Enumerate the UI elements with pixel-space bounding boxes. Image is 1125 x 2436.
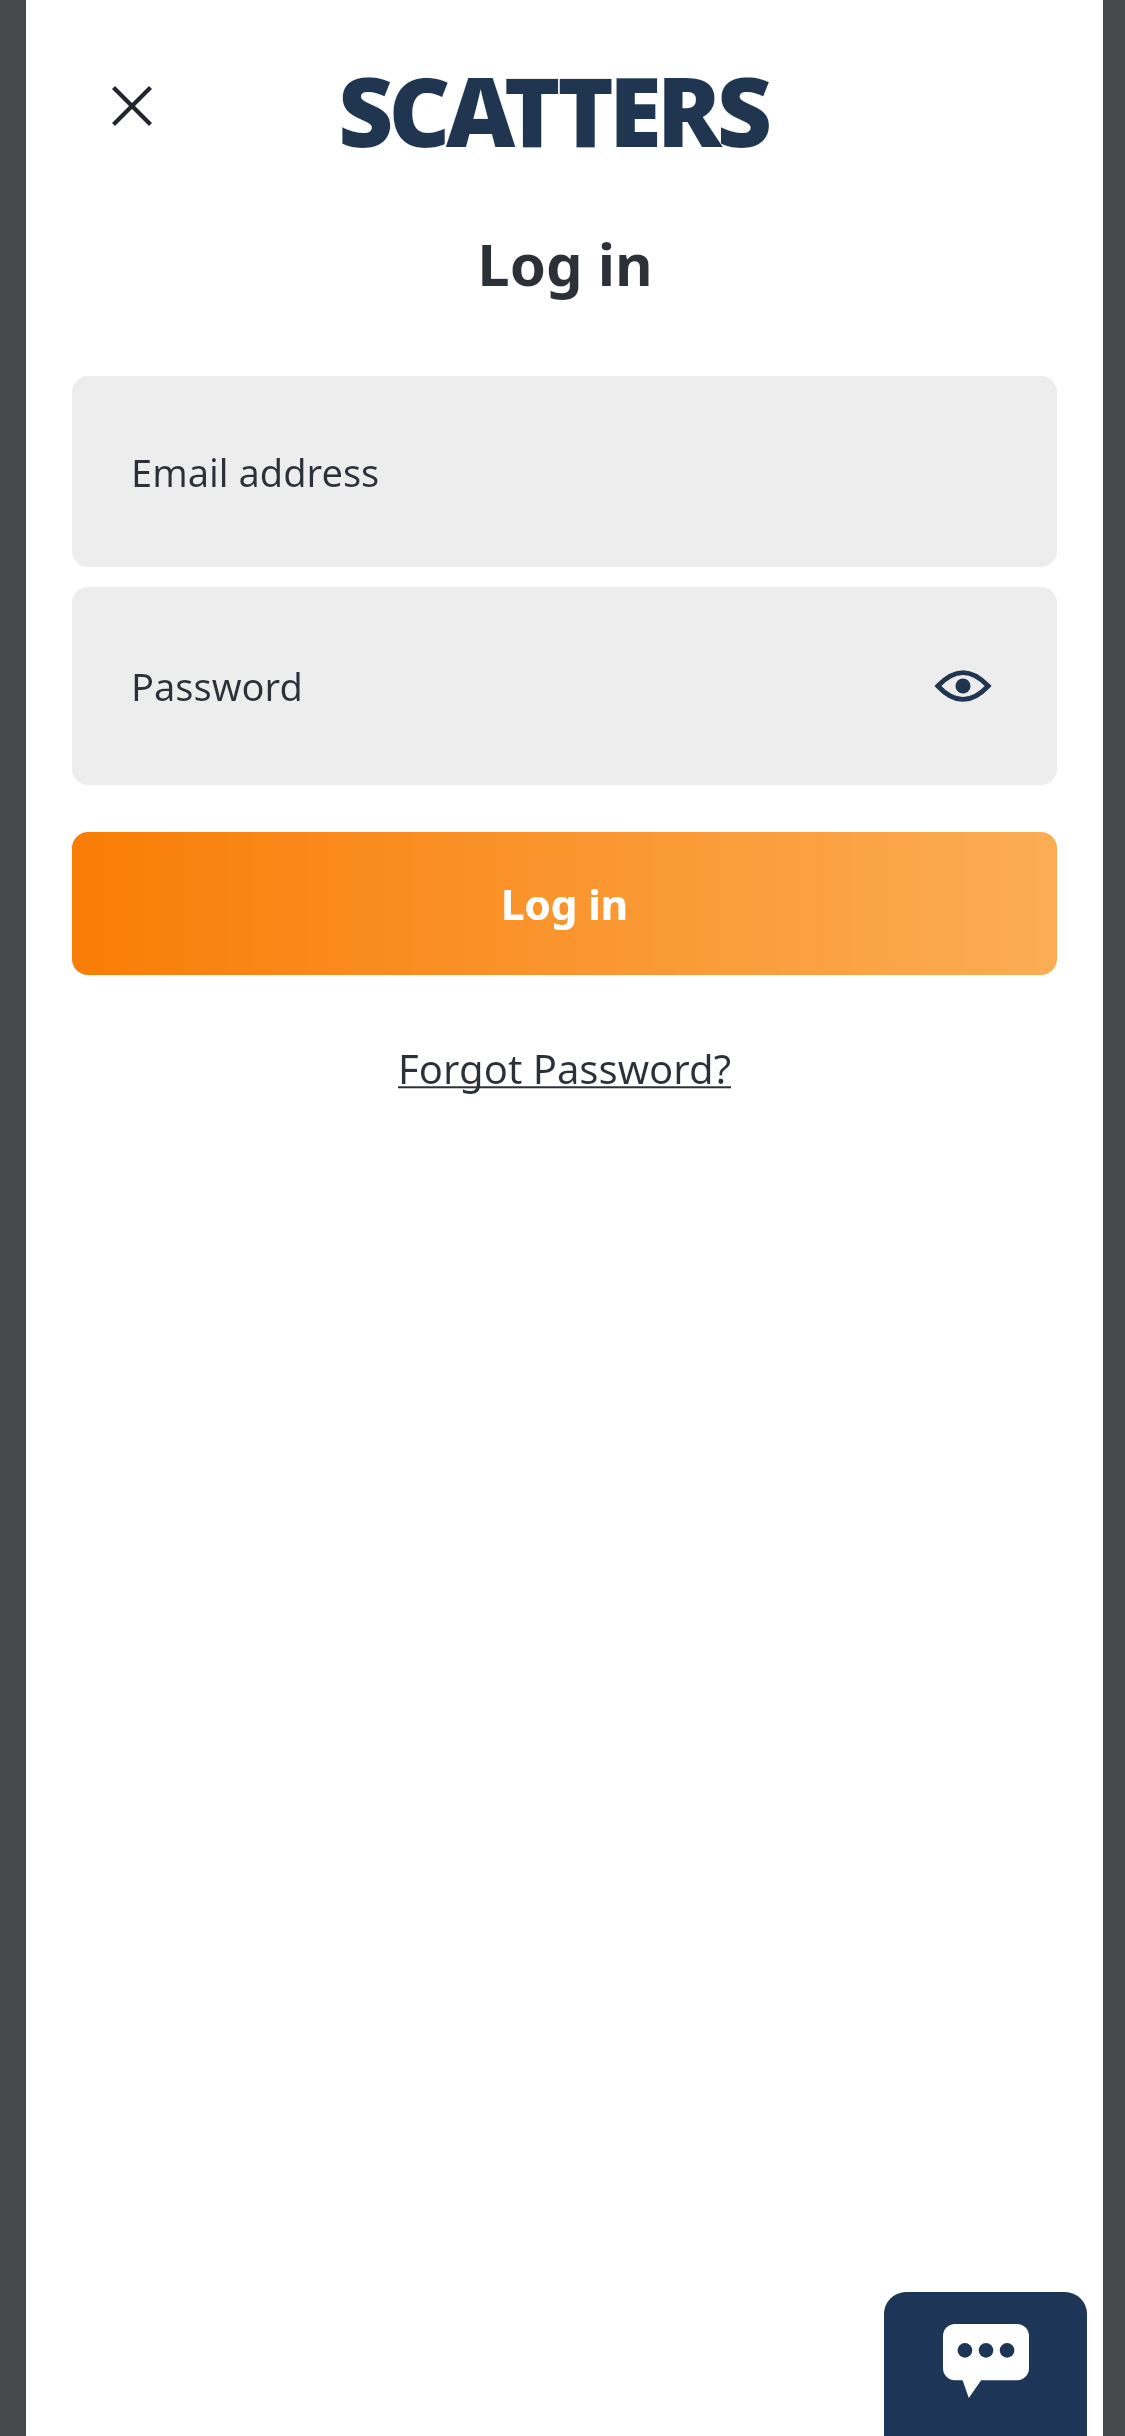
staticText: Email address bbox=[131, 446, 380, 498]
button[interactable]: Email address bbox=[72, 376, 1057, 567]
button[interactable]: Forgot Password? bbox=[386, 1035, 743, 1101]
staticText: Log in bbox=[477, 224, 653, 303]
staticText: Password bbox=[131, 660, 303, 712]
button[interactable]: Password bbox=[72, 587, 1057, 785]
staticText: Forgot Password? bbox=[398, 1041, 731, 1095]
button[interactable]: Log in bbox=[72, 832, 1057, 975]
button[interactable]: Chat support bbox=[884, 2292, 1087, 2436]
button[interactable]: Show password bbox=[927, 650, 999, 722]
button[interactable]: Close bbox=[102, 76, 162, 136]
staticText: SCATTERS bbox=[338, 44, 768, 175]
staticText: Log in bbox=[501, 875, 629, 932]
